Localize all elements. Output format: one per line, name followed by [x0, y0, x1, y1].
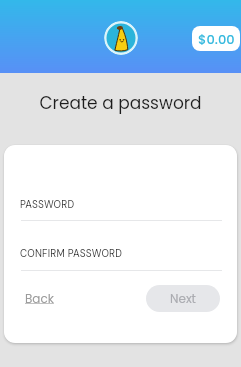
button[interactable]: Next — [146, 285, 220, 312]
button[interactable]: $0.00 — [192, 26, 240, 51]
staticText: Back — [25, 290, 54, 307]
staticText: PASSWORD — [20, 198, 75, 211]
staticText: CONFIRM PASSWORD — [20, 247, 123, 260]
button[interactable]: Profile — [104, 21, 138, 55]
staticText: Create a password — [0, 91, 241, 115]
button[interactable]: Back — [25, 290, 54, 307]
staticText: Next — [170, 290, 196, 307]
staticText: $0.00 — [198, 30, 235, 48]
